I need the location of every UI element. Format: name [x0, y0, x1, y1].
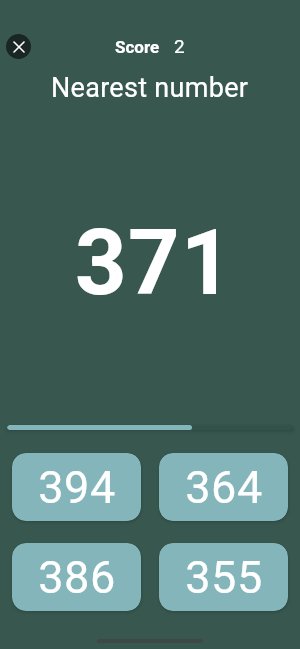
button[interactable]: Close	[6, 34, 31, 59]
staticText: 371	[75, 211, 234, 316]
button[interactable]: 355	[159, 543, 288, 611]
staticText: 364	[185, 461, 263, 514]
staticText: 2	[174, 35, 185, 57]
button[interactable]: 386	[12, 543, 141, 611]
staticText: Score	[115, 37, 160, 57]
staticText: 386	[38, 551, 116, 604]
staticText: 355	[185, 551, 263, 604]
staticText: 394	[38, 461, 116, 514]
button[interactable]: 364	[159, 453, 288, 521]
button[interactable]: 394	[12, 453, 141, 521]
staticText: Nearest number	[51, 72, 249, 104]
